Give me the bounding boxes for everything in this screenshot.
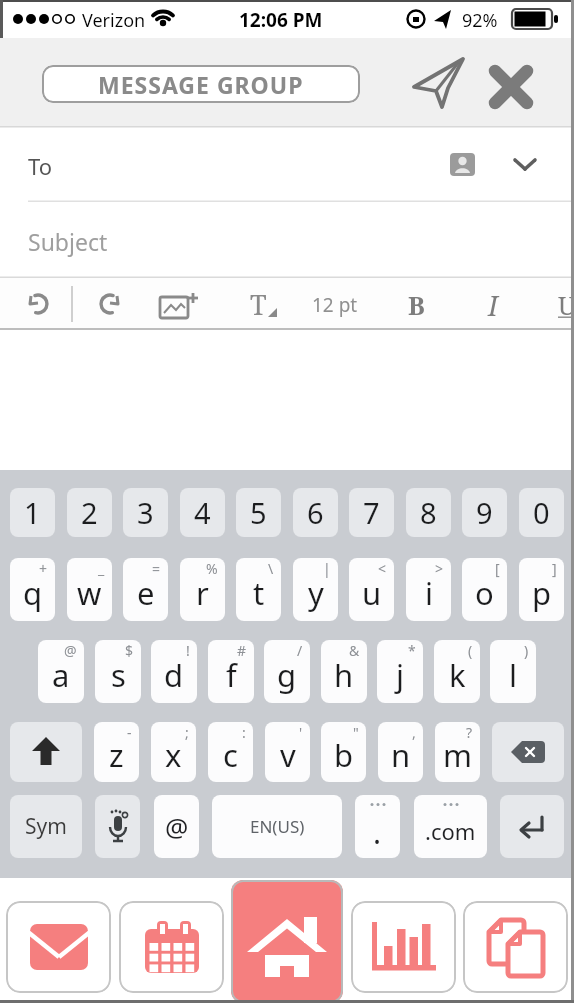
button[interactable]: B [408, 288, 425, 322]
button[interactable] [351, 901, 456, 993]
staticText: ] [552, 559, 557, 578]
button[interactable]: ( [434, 640, 480, 703]
staticText: ? [466, 723, 473, 742]
button[interactable]: < [349, 558, 394, 621]
staticText: * [408, 641, 416, 660]
button[interactable] [492, 722, 564, 782]
staticText: - [127, 723, 132, 742]
button[interactable]: .com [414, 795, 487, 858]
button[interactable]: ; [151, 722, 196, 782]
staticText: EN(US) [250, 815, 305, 838]
staticText: k [449, 654, 466, 696]
button[interactable]: EN(US) [212, 795, 342, 858]
button[interactable]: * [377, 640, 423, 703]
button[interactable]: 1 [10, 488, 55, 537]
button[interactable]: - [94, 722, 139, 782]
button[interactable]: I [488, 287, 498, 324]
staticText: @ [64, 641, 77, 660]
button[interactable]: 9 [462, 488, 507, 537]
button[interactable]: 12 pt [312, 292, 358, 318]
staticText: ! [186, 641, 190, 660]
button[interactable]: & [321, 640, 367, 703]
staticText: 2 [81, 493, 98, 532]
staticText: [ [495, 559, 500, 578]
button[interactable] [26, 292, 52, 318]
button[interactable]: 3 [123, 488, 168, 537]
button[interactable]: @ [38, 640, 84, 703]
staticText: g [277, 654, 297, 696]
staticText: $ [125, 641, 134, 660]
button[interactable]: " [321, 722, 366, 782]
staticText: 6 [307, 493, 324, 532]
button[interactable]: | [293, 558, 338, 621]
button[interactable]: % [180, 558, 225, 621]
button[interactable]: . [355, 795, 400, 858]
staticText: h [334, 654, 354, 696]
button[interactable] [412, 57, 466, 111]
button[interactable] [119, 901, 224, 993]
button[interactable]: 8 [406, 488, 451, 537]
button[interactable]: ' [265, 722, 310, 782]
staticText: x [165, 734, 182, 776]
button[interactable]: To [0, 126, 574, 202]
button[interactable]: 7 [349, 488, 394, 537]
button[interactable]: MESSAGE GROUP [42, 65, 360, 103]
staticText: s [111, 654, 126, 696]
button[interactable]: / [264, 640, 310, 703]
button[interactable]: : [208, 722, 253, 782]
staticText: b [334, 734, 354, 776]
staticText: a [52, 654, 70, 696]
button[interactable] [96, 292, 122, 318]
button[interactable]: $ [95, 640, 141, 703]
button[interactable] [6, 901, 111, 993]
button[interactable]: ) [490, 640, 536, 703]
button[interactable]: + [10, 558, 55, 621]
staticText: > [435, 559, 444, 578]
button[interactable]: 6 [293, 488, 338, 537]
staticText: l [509, 654, 517, 696]
button[interactable]: Sym [10, 795, 82, 858]
button[interactable]: 5 [236, 488, 281, 537]
button[interactable]: Subject [0, 202, 574, 278]
button[interactable]: @ [154, 795, 199, 858]
button[interactable] [10, 722, 82, 782]
button[interactable]: , [378, 722, 423, 782]
staticText: \ [268, 559, 274, 578]
button[interactable]: ? [435, 722, 480, 782]
button[interactable]: _ [67, 558, 112, 621]
staticText: d [164, 654, 184, 696]
staticText: # [237, 641, 247, 660]
staticText: o [475, 572, 494, 614]
staticText: Subject [28, 226, 108, 257]
staticText: t [253, 572, 265, 614]
button[interactable] [231, 880, 343, 1003]
staticText: i [425, 572, 433, 614]
button[interactable]: \ [236, 558, 281, 621]
staticText: y [308, 572, 324, 614]
staticText: w [77, 572, 102, 614]
staticText: 5 [250, 493, 267, 532]
button[interactable]: 4 [180, 488, 225, 537]
button[interactable] [500, 795, 564, 858]
button[interactable]: 2 [67, 488, 112, 537]
button[interactable] [95, 795, 140, 858]
staticText: e [137, 572, 155, 614]
staticText: To [28, 151, 53, 181]
button[interactable]: [ [462, 558, 507, 621]
staticText: MESSAGE GROUP [98, 69, 304, 100]
button[interactable] [160, 292, 198, 320]
staticText: T [250, 286, 267, 323]
button[interactable]: # [208, 640, 254, 703]
button[interactable]: U [558, 288, 574, 322]
staticText: 92% [462, 8, 498, 33]
button[interactable]: > [406, 558, 451, 621]
button[interactable] [490, 67, 532, 107]
button[interactable]: = [123, 558, 168, 621]
button[interactable]: ! [151, 640, 197, 703]
button[interactable]: 0 [519, 488, 564, 537]
staticText: ; [185, 723, 189, 742]
button[interactable]: ] [519, 558, 564, 621]
staticText: _ [98, 559, 105, 578]
staticText: < [378, 559, 387, 578]
button[interactable] [463, 901, 568, 993]
